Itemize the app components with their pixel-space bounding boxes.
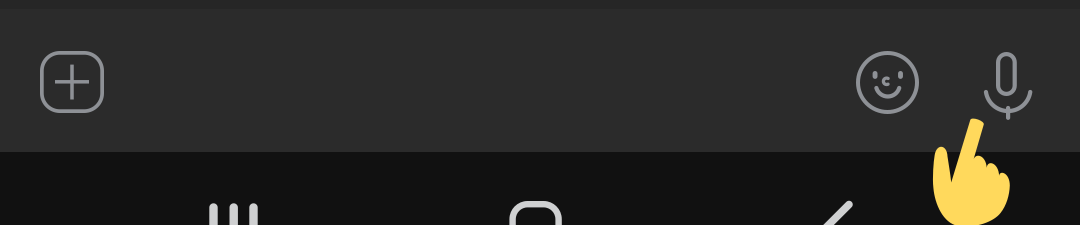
button[interactable]: Back	[744, 152, 914, 225]
button[interactable]: Recent apps	[148, 152, 318, 225]
button[interactable]: Add attachment	[12, 22, 136, 152]
button[interactable]: Emoji keyboard	[826, 22, 950, 152]
button[interactable]: Home	[450, 152, 620, 225]
button[interactable]: Voice message	[946, 22, 1070, 152]
